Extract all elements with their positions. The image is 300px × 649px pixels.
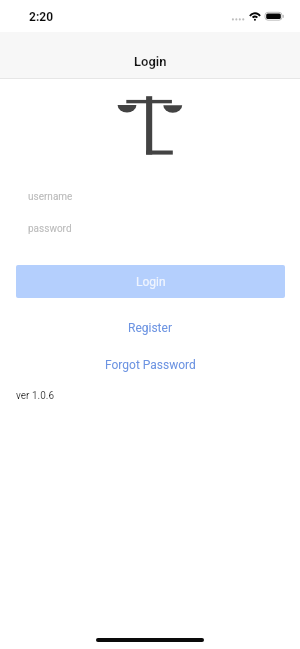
staticText: 2:20 bbox=[29, 10, 54, 24]
staticText: username bbox=[28, 191, 73, 203]
button[interactable]: password bbox=[0, 213, 300, 245]
staticText: Register bbox=[128, 321, 172, 335]
staticText: Login bbox=[134, 54, 167, 69]
staticText: ver 1.0.6 bbox=[16, 390, 55, 402]
button[interactable]: Register bbox=[0, 317, 300, 339]
staticText: Login bbox=[136, 275, 166, 289]
button[interactable]: Forgot Password bbox=[0, 354, 300, 376]
staticText: Forgot Password bbox=[105, 358, 196, 372]
button[interactable]: Login bbox=[16, 265, 285, 298]
staticText: password bbox=[28, 223, 72, 235]
button[interactable]: username bbox=[0, 181, 300, 213]
